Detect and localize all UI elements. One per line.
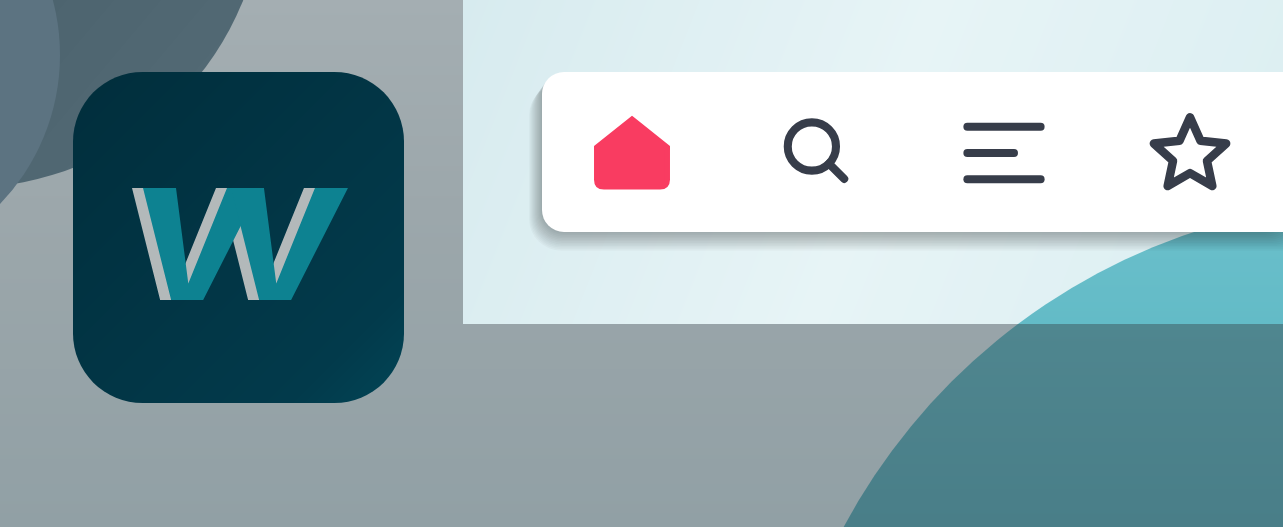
button[interactable]: Favorites <box>1115 78 1265 228</box>
button[interactable]: Menu <box>929 78 1079 228</box>
button[interactable]: Wallpaper app icon <box>73 72 404 403</box>
button[interactable]: Home <box>557 78 707 228</box>
button[interactable]: Search <box>743 78 893 228</box>
